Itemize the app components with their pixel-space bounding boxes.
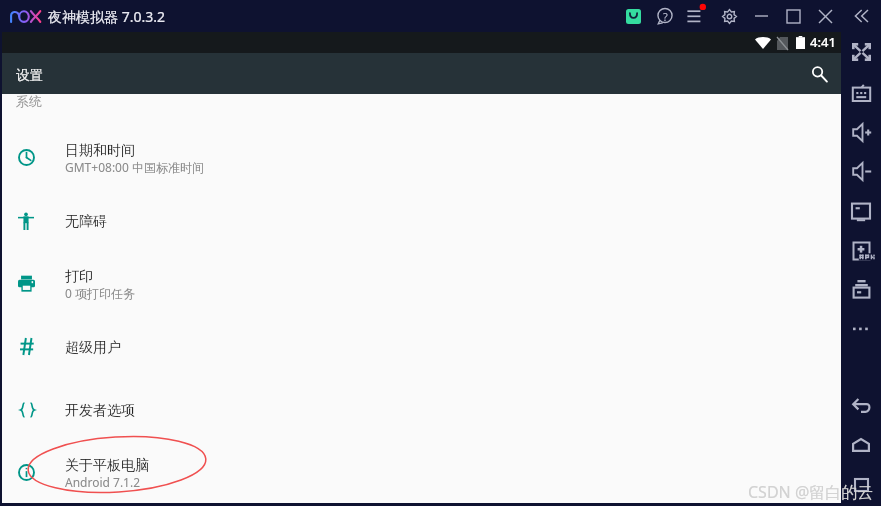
button[interactable]: 打印 xyxy=(2,252,841,315)
button[interactable]: Home xyxy=(841,428,881,462)
button[interactable]: Close xyxy=(811,0,839,32)
button[interactable]: Menu xyxy=(683,0,711,32)
button[interactable]: Keyboard xyxy=(841,75,881,109)
button[interactable]: 关于平板电脑 xyxy=(2,441,841,504)
staticText: 无障碍 xyxy=(65,213,107,231)
button[interactable]: Help xyxy=(651,0,679,32)
staticText: CSDN @留白的云 xyxy=(748,481,874,503)
button[interactable]: 日期和时间 xyxy=(2,126,841,189)
staticText: 4:41 xyxy=(810,33,836,51)
button[interactable]: Settings xyxy=(715,0,743,32)
button[interactable]: Minimize xyxy=(747,0,775,32)
button[interactable]: Fullscreen xyxy=(841,35,881,69)
staticText: GMT+08:00 中国标准时间 xyxy=(65,159,204,175)
staticText: 超级用户 xyxy=(65,339,121,357)
staticText: 关于平板电脑 xyxy=(65,457,149,475)
button[interactable]: Shared folder xyxy=(841,272,881,306)
staticText: ? xyxy=(663,9,668,24)
staticText: 日期和时间 xyxy=(65,142,135,160)
button[interactable]: 无障碍 xyxy=(2,189,841,252)
button[interactable]: Search xyxy=(798,53,839,94)
staticText: 0 项打印任务 xyxy=(65,285,135,301)
button[interactable]: Screenshot xyxy=(841,195,881,229)
button[interactable]: Install APK xyxy=(841,234,881,268)
staticText: 系统 xyxy=(16,93,42,109)
button[interactable]: Recents xyxy=(841,468,881,502)
button[interactable]: Back xyxy=(841,388,881,422)
button[interactable]: Volume down xyxy=(841,154,881,188)
staticText: Android 7.1.2 xyxy=(65,474,141,490)
button[interactable]: Volume up xyxy=(841,115,881,149)
button[interactable]: App store xyxy=(619,0,647,32)
staticText: 开发者选项 xyxy=(65,402,135,420)
button[interactable]: More xyxy=(841,312,881,346)
staticText: 夜神模拟器 7.0.3.2 xyxy=(48,7,165,26)
staticText: 设置 xyxy=(16,67,43,84)
button[interactable]: Maximize xyxy=(779,0,807,32)
button[interactable]: Collapse xyxy=(847,0,875,32)
button[interactable]: 开发者选项 xyxy=(2,378,841,441)
staticText: 打印 xyxy=(65,268,93,286)
button[interactable]: 超级用户 xyxy=(2,315,841,378)
button: 系统 xyxy=(2,94,841,125)
